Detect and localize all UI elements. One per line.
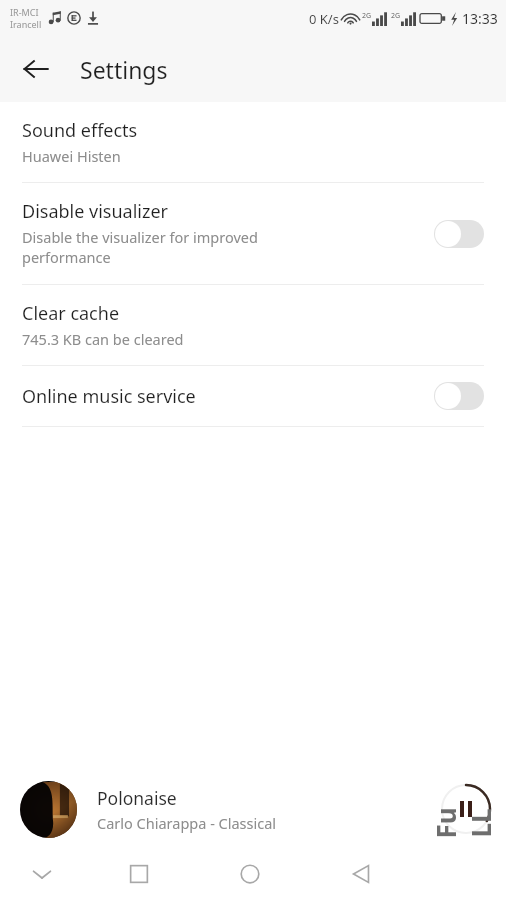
button[interactable]: Back <box>305 848 416 900</box>
staticText: 13:33 <box>462 9 498 28</box>
staticText: 745.3 KB can be cleared <box>22 329 184 349</box>
staticText: Disable visualizer <box>22 199 169 224</box>
button[interactable]: Recents <box>83 848 194 900</box>
button[interactable]: Pause <box>438 781 494 837</box>
button[interactable]: Toggle <box>434 382 484 410</box>
button[interactable]: Toggle <box>434 220 484 248</box>
staticText: Disable the visualizer for improved perf… <box>22 227 258 268</box>
staticText: Polonaise <box>97 786 177 810</box>
button[interactable]: Back <box>10 43 62 95</box>
staticText: Online music service <box>22 384 196 409</box>
staticText: Huawei Histen <box>22 146 121 166</box>
staticText: FuLLKade <box>428 806 506 840</box>
staticText: Settings <box>80 54 168 85</box>
button[interactable]: Home <box>194 848 305 900</box>
staticText: 0 K/s <box>309 10 339 28</box>
button[interactable]: Disable visualizer <box>0 183 506 284</box>
staticText: Carlo Chiarappa - Classical <box>97 813 277 833</box>
staticText: 2G <box>362 11 372 21</box>
staticText: Sound effects <box>22 118 138 143</box>
staticText: Irancell <box>10 18 42 30</box>
button[interactable]: Online music service <box>0 366 506 426</box>
button[interactable]: Clear cache <box>0 285 506 365</box>
staticText: 2G <box>391 11 401 21</box>
button[interactable]: Polonaise <box>0 770 506 848</box>
button[interactable]: Sound effects <box>0 102 506 182</box>
staticText: IR-MCI <box>10 6 39 18</box>
staticText: Clear cache <box>22 301 120 326</box>
button[interactable]: Collapse <box>0 848 83 900</box>
